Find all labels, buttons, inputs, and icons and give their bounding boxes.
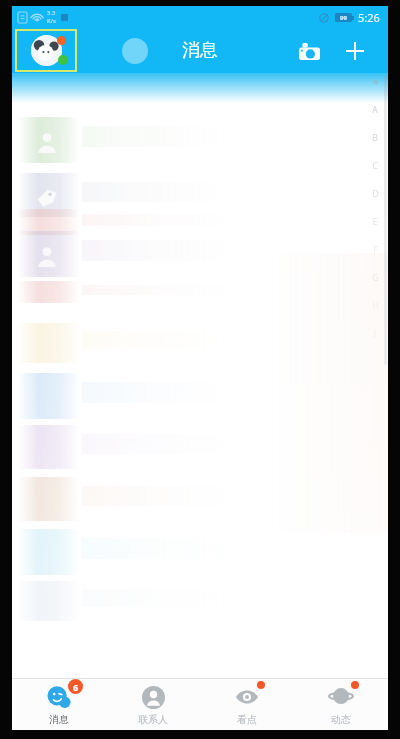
staticText: 消息 [49, 713, 69, 726]
staticText: A [372, 103, 378, 115]
staticText: 3.3 [47, 9, 56, 17]
button[interactable]: Add [336, 32, 374, 70]
staticText: 5:26 [358, 10, 380, 25]
button[interactable]: 看点 [200, 679, 294, 730]
staticText: K/s [47, 17, 56, 25]
staticText: 6 [73, 681, 79, 693]
button[interactable]: Profile [16, 30, 76, 71]
button[interactable]: Alphabet index [368, 77, 382, 355]
staticText: 看点 [237, 713, 257, 726]
staticText: G [372, 271, 379, 283]
staticText: F [373, 243, 378, 255]
staticText: D [372, 187, 379, 199]
button[interactable]: 联系人 [106, 679, 200, 730]
button[interactable]: 动态 [294, 679, 388, 730]
button[interactable]: 6 [12, 679, 106, 730]
staticText: 消息 [182, 39, 218, 62]
staticText: B [372, 131, 378, 143]
button[interactable]: Camera [290, 32, 328, 70]
staticText: 动态 [331, 713, 351, 726]
staticText: C [372, 159, 378, 171]
staticText: E [372, 215, 378, 227]
staticText: 99 [340, 14, 347, 22]
staticText: ★ [371, 77, 380, 87]
staticText: H [372, 299, 379, 311]
staticText: 联系人 [138, 713, 168, 726]
